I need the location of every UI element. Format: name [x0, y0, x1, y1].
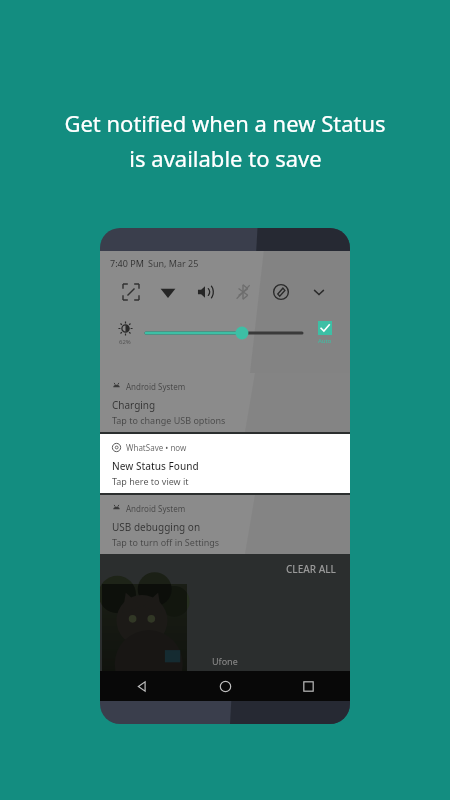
staticText: Charging — [112, 398, 156, 412]
button[interactable]: Back — [100, 671, 184, 701]
button[interactable]: Bluetooth — [224, 277, 262, 307]
staticText: Get notified when a new Status — [64, 108, 386, 138]
button[interactable]: CLEAR ALL — [100, 554, 350, 584]
staticText: 62% — [119, 338, 131, 346]
staticText: CLEAR ALL — [286, 562, 336, 576]
button[interactable]: Android System — [100, 495, 350, 554]
staticText: 7:40 PM — [110, 257, 144, 269]
staticText: WhatSave • now — [126, 442, 187, 453]
staticText: Tap to turn off in Settings — [112, 536, 220, 548]
button[interactable]: Cast screen — [112, 277, 149, 307]
staticText: Auto — [318, 337, 332, 345]
button[interactable] — [146, 321, 302, 345]
staticText: Tap here to view it — [112, 475, 189, 487]
staticText: USB debugging on — [112, 520, 201, 534]
button[interactable]: WhatSave • now — [100, 434, 350, 493]
button[interactable]: Recents — [267, 671, 350, 701]
button[interactable]: Volume — [186, 277, 224, 307]
staticText: Tap to change USB options — [112, 414, 226, 426]
staticText: is available to save — [129, 143, 322, 173]
button[interactable]: Auto-rotate — [262, 277, 300, 307]
button[interactable]: Home — [184, 671, 267, 701]
button[interactable]: Wi-Fi — [149, 277, 186, 307]
staticText: New Status Found — [112, 459, 199, 473]
staticText: Android System — [126, 503, 186, 514]
button[interactable]: Auto brightness — [312, 321, 338, 345]
button[interactable]: Expand — [300, 277, 338, 307]
staticText: Sun, Mar 25 — [148, 257, 199, 269]
button[interactable]: Android System — [100, 373, 350, 432]
staticText: Android System — [126, 381, 186, 392]
staticText: Ufone — [212, 655, 238, 667]
